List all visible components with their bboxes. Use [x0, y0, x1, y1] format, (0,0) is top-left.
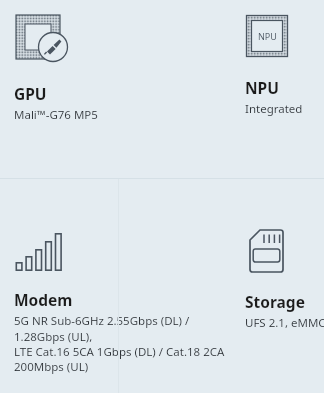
- button[interactable]: Modem: [14, 228, 129, 374]
- other: Storage: [245, 228, 289, 274]
- staticText: Mali™-G76 MP5: [14, 107, 98, 123]
- staticText: GPU: [14, 83, 47, 104]
- staticText: Storage: [245, 291, 305, 312]
- staticText: 5G NR Sub-6GHz 2.55Gbps (DL) / 1.28Gbps …: [14, 313, 129, 374]
- staticText: UFS 2.1, eMMC 5.1: [245, 315, 324, 331]
- button[interactable]: GPU: [14, 14, 129, 123]
- other: GPU: [14, 14, 76, 64]
- button[interactable]: NPU: [245, 14, 324, 117]
- staticText: NPU: [258, 30, 277, 42]
- other: Modem: [14, 228, 70, 272]
- button[interactable]: Storage: [245, 228, 324, 331]
- staticText: Modem: [14, 289, 73, 310]
- staticText: NPU: [245, 77, 279, 98]
- other: NPU: [245, 14, 289, 58]
- staticText: Integrated: [245, 101, 303, 117]
